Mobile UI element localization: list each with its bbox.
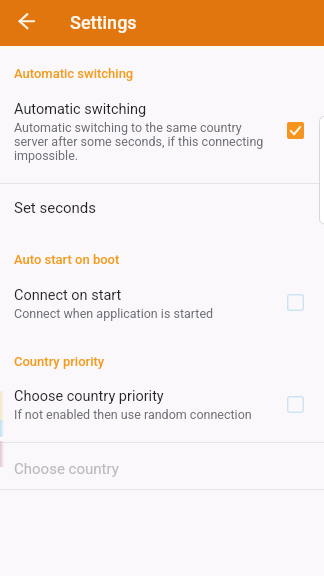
staticText: Connect on start <box>14 287 122 304</box>
staticText: Automatic switching <box>14 66 134 81</box>
staticText: Choose country <box>14 460 119 478</box>
staticText: Country priority <box>14 354 105 369</box>
staticText: Choose country priority <box>14 388 164 405</box>
staticText: Auto start on boot <box>14 252 120 267</box>
staticText: Settings <box>70 12 137 33</box>
button[interactable]: Choose country <box>0 443 324 489</box>
button[interactable]: Back <box>6 4 38 36</box>
button[interactable]: Automatic switching <box>0 101 324 163</box>
staticText: Automatic switching to the same country … <box>14 120 279 163</box>
button[interactable]: Set seconds <box>0 184 324 228</box>
button[interactable]: Choose country priority <box>0 388 324 422</box>
staticText: Automatic switching <box>14 101 147 118</box>
button[interactable]: Toggle <box>287 396 304 413</box>
staticText: If not enabled then use random connectio… <box>14 407 252 422</box>
button[interactable]: Toggle <box>287 294 304 311</box>
button[interactable]: Connect on start <box>0 287 324 321</box>
staticText: Set seconds <box>14 199 97 217</box>
button[interactable]: Toggle <box>287 122 304 139</box>
staticText: Connect when application is started <box>14 306 214 321</box>
